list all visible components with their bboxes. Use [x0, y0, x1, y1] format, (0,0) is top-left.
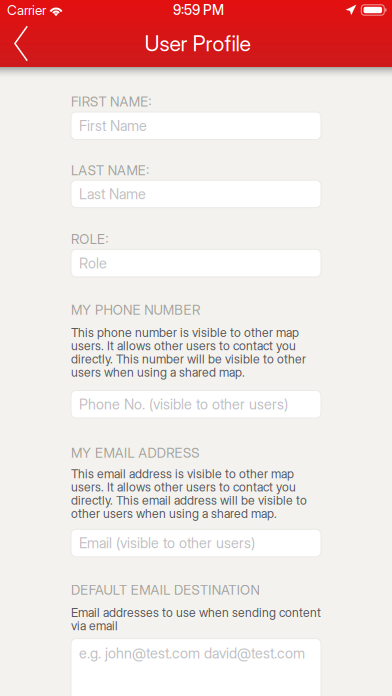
button[interactable]: First Name: [71, 112, 321, 139]
staticText: Phone No. (visible to other users): [79, 395, 288, 413]
staticText: Email (visible to other users): [79, 534, 255, 552]
button[interactable]: e.g. john@test.com david@test.com: [71, 639, 321, 696]
staticText: e.g. john@test.com david@test.com: [79, 645, 305, 662]
button[interactable]: Last Name: [71, 180, 321, 208]
staticText: FIRST NAME:: [71, 94, 151, 110]
staticText: via email: [71, 618, 118, 633]
staticText: First Name: [79, 117, 147, 134]
staticText: Carrier: [7, 2, 46, 18]
staticText: other users when using a shared map.: [71, 506, 277, 521]
button[interactable]: Email (visible to other users): [71, 529, 321, 557]
staticText: DEFAULT EMAIL DESTINATION: [71, 582, 259, 598]
button[interactable]: Role: [71, 249, 321, 277]
staticText: 9:59 PM: [173, 2, 224, 18]
staticText: directly. This number will be visible to…: [71, 352, 306, 366]
staticText: This phone number is visible to other ma…: [71, 325, 299, 340]
staticText: directly. This email address will be vis…: [71, 493, 307, 508]
staticText: MY EMAIL ADDRESS: [71, 445, 199, 461]
staticText: User Profile: [144, 31, 250, 56]
staticText: MY PHONE NUMBER: [71, 302, 200, 318]
staticText: Role: [79, 254, 107, 272]
staticText: ROLE:: [71, 231, 108, 247]
staticText: users when using a shared map.: [71, 365, 245, 380]
staticText: Last Name: [79, 185, 146, 203]
staticText: Email addresses to use when sending cont…: [71, 605, 321, 620]
staticText: users. It allows other users to contact …: [71, 338, 296, 353]
button[interactable]: Phone No. (visible to other users): [71, 390, 321, 418]
staticText: users. It allows other users to contact …: [71, 480, 296, 494]
button[interactable]: Back: [0, 20, 42, 67]
staticText: LAST NAME:: [71, 162, 149, 178]
staticText: This email address is visible to other m…: [71, 466, 294, 481]
